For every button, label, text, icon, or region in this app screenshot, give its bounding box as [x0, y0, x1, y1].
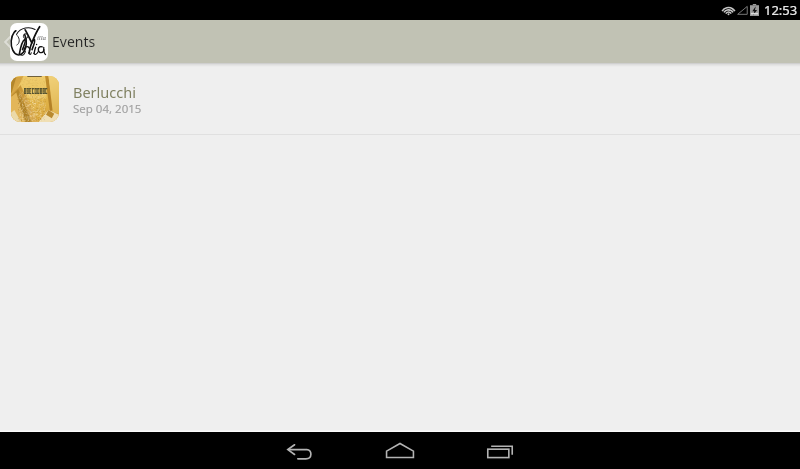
button[interactable]: Navigate up	[0, 20, 96, 63]
button[interactable]: Home	[350, 432, 450, 469]
button[interactable]: Berlucchi	[0, 63, 800, 134]
staticText: Events	[52, 32, 96, 51]
button[interactable]: Recent apps	[450, 432, 550, 469]
staticText: Berlucchi	[73, 82, 136, 102]
staticText: Sep 04, 2015	[73, 101, 142, 117]
button[interactable]: Back	[250, 432, 350, 469]
staticText: illa	[37, 34, 46, 42]
staticText: 12:53	[764, 1, 798, 19]
other: Navigate up	[4, 36, 11, 48]
